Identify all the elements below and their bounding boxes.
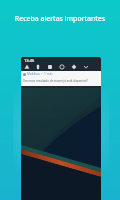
button[interactable]: Mobiliza • 1 min (23, 72, 99, 86)
staticText: Receba alertas importantes (0, 14, 120, 24)
staticText: 13:46 (24, 58, 35, 63)
staticText: Mobiliza • 1 min (27, 72, 53, 76)
staticText: Um novo resultado de exame já está dispo… (23, 79, 88, 83)
